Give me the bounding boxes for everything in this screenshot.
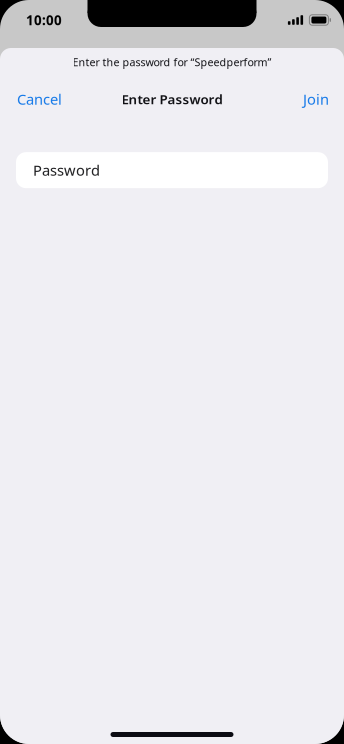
staticText: 10:00 bbox=[26, 11, 62, 29]
button[interactable]: Password bbox=[16, 152, 328, 188]
staticText: Cancel bbox=[17, 89, 62, 109]
staticText: Join bbox=[303, 89, 329, 109]
button[interactable]: Join bbox=[293, 79, 344, 119]
staticText: Enter Password bbox=[121, 90, 222, 108]
button[interactable]: Cancel bbox=[0, 79, 72, 119]
staticText: Password bbox=[33, 160, 100, 180]
staticText: Enter the password for “Speedperform” bbox=[72, 55, 271, 69]
